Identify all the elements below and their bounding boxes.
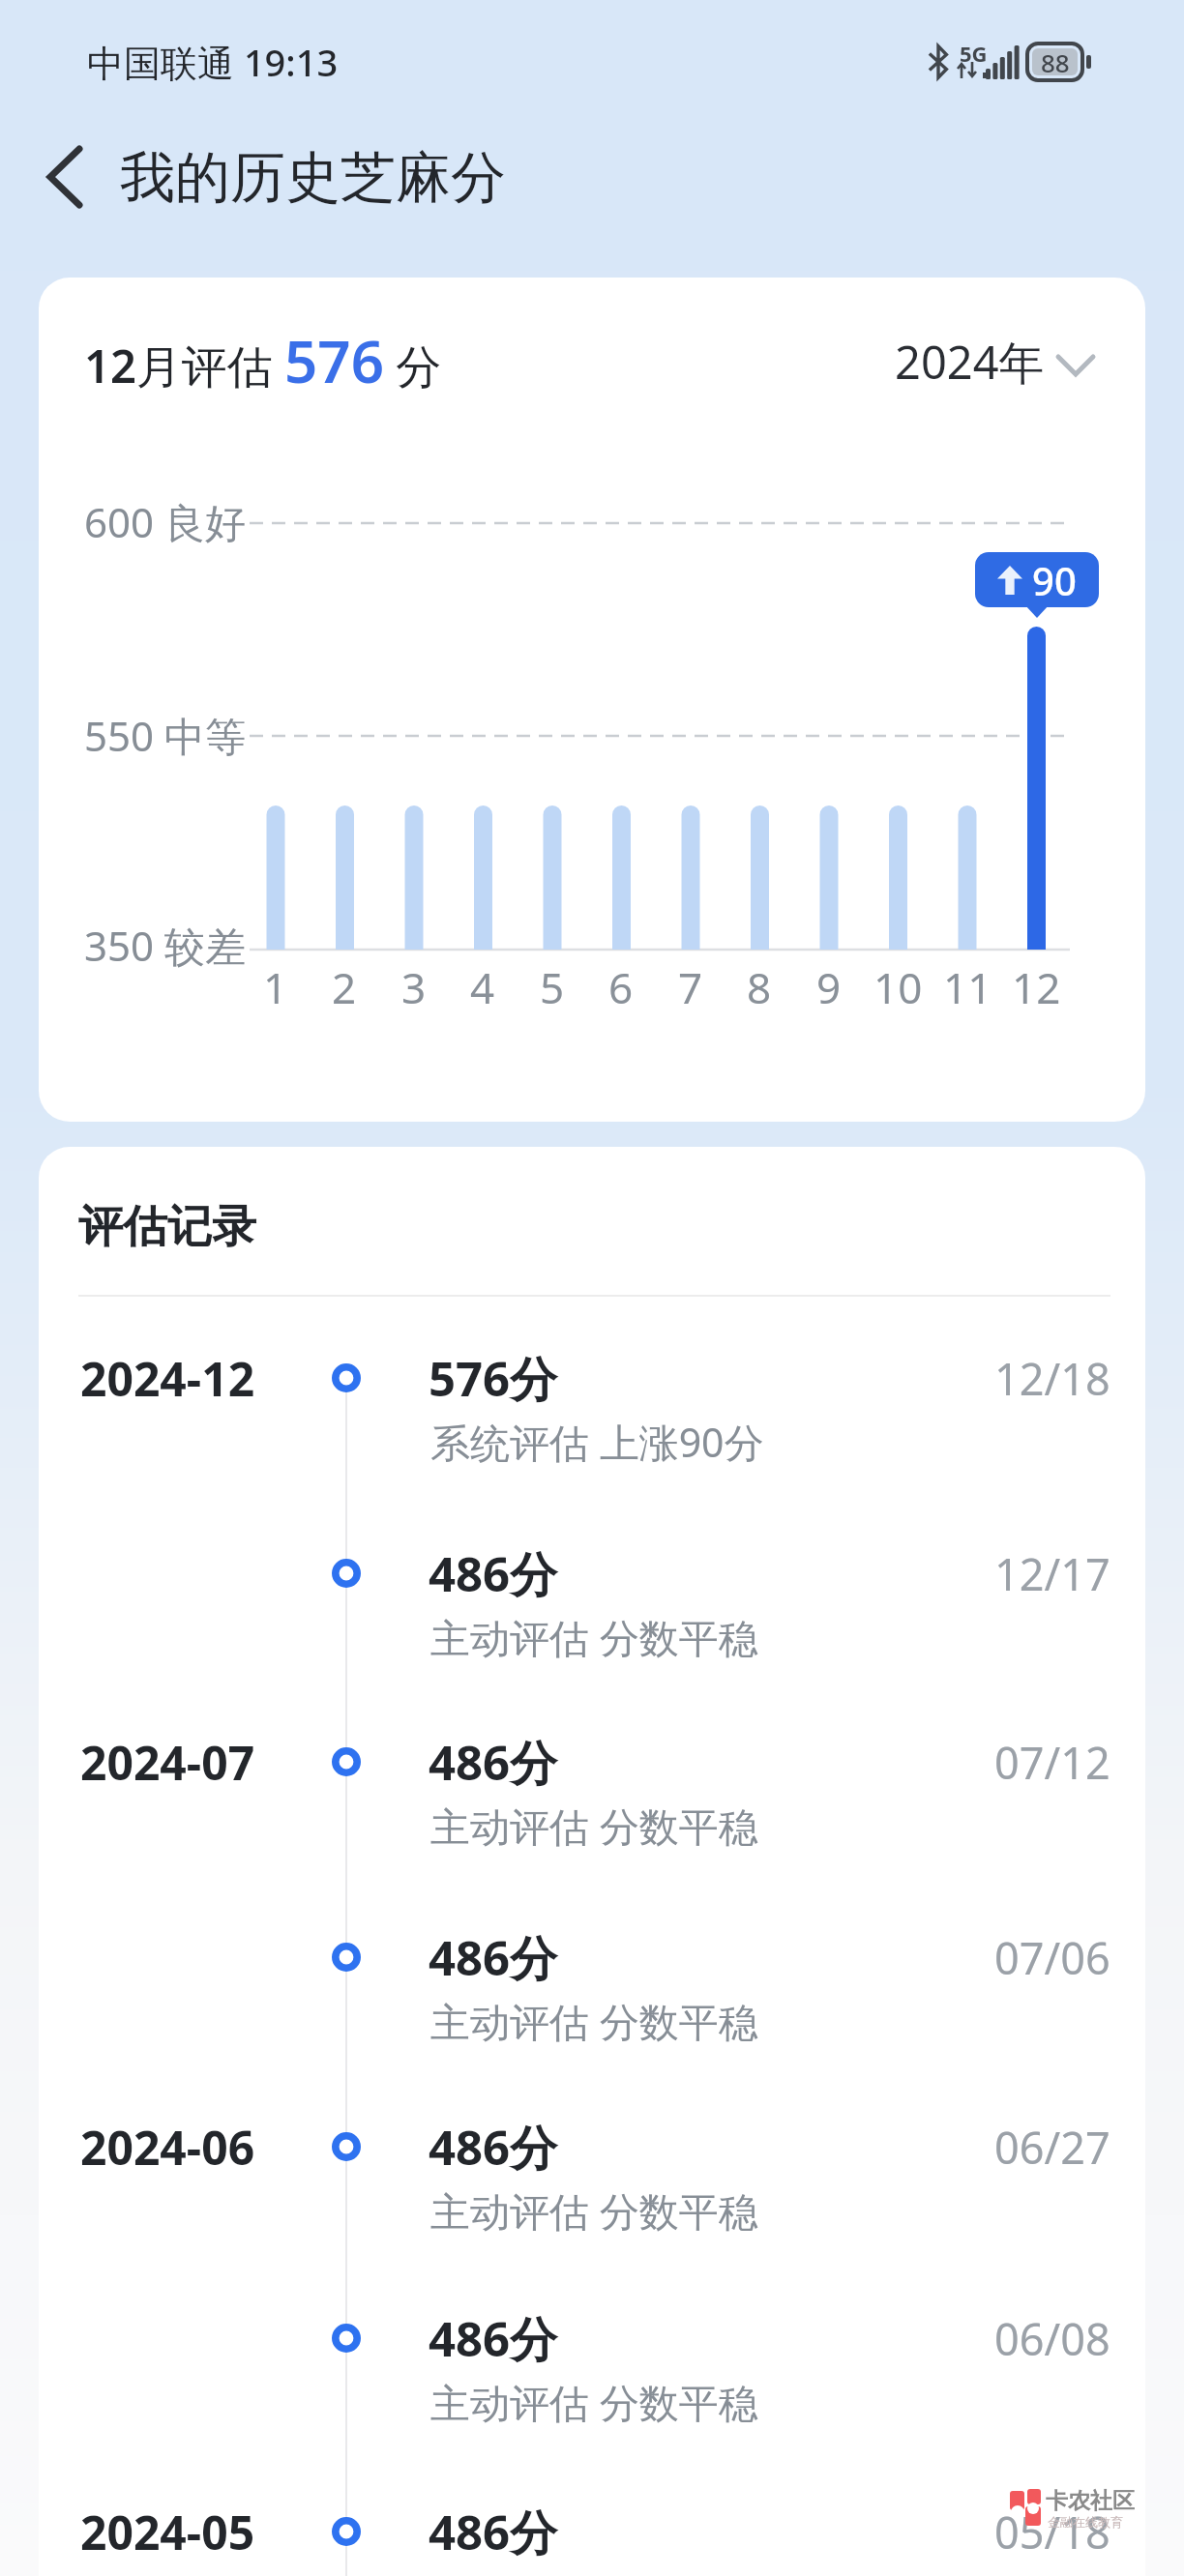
staticText: 系统评估 上涨90分 (430, 1415, 764, 1469)
staticText: 主动评估 分数平稳 (430, 2183, 758, 2238)
staticText: 486分 (429, 1541, 558, 1606)
staticText: 2024-05 (80, 2501, 255, 2563)
staticText: 11 (943, 958, 992, 1016)
staticText: 7 (678, 958, 703, 1016)
staticText: 6 (608, 958, 634, 1016)
staticText: 350 较差 (84, 918, 246, 973)
staticText: 2024年 (895, 331, 1045, 393)
staticText: 2024-06 (80, 2116, 255, 2179)
button[interactable] (429, 1540, 1110, 1676)
staticText: 550 中等 (84, 708, 246, 763)
staticText: 8 (747, 958, 772, 1016)
button[interactable] (429, 2499, 1110, 2576)
button[interactable]: 90 (975, 552, 1099, 607)
staticText: 2024-07 (80, 1731, 255, 1794)
staticText: 486分 (429, 2500, 558, 2564)
button[interactable]: 2024年 (871, 331, 1107, 393)
staticText: 3 (401, 958, 427, 1016)
staticText: 486分 (429, 2115, 558, 2180)
staticText: 评估记录 (78, 1199, 256, 1255)
staticText: 2024-12 (80, 1347, 255, 1410)
staticText: 05/18 (994, 2503, 1110, 2561)
staticText: 06/08 (994, 2309, 1110, 2368)
staticText: 中国联通 19:13 (87, 37, 339, 87)
staticText: 4 (470, 958, 495, 1016)
staticText: 12月评估 576 分 (84, 321, 442, 398)
staticText: 88 (1041, 45, 1070, 79)
button[interactable] (429, 1924, 1110, 2060)
staticText: 5G (960, 39, 988, 62)
button[interactable] (429, 2305, 1110, 2441)
staticText: 486分 (429, 2306, 558, 2371)
staticText: 我的历史芝麻分 (120, 143, 506, 213)
staticText: 12 (1012, 958, 1061, 1016)
staticText: 主动评估 分数平稳 (430, 1799, 758, 1853)
staticText: 90 (1032, 554, 1077, 606)
staticText: 12/18 (994, 1349, 1110, 1408)
staticText: 2 (332, 958, 357, 1016)
button[interactable] (29, 135, 97, 219)
staticText: 07/12 (994, 1733, 1110, 1792)
staticText: 主动评估 分数平稳 (430, 1610, 758, 1664)
staticText: 07/06 (994, 1928, 1110, 1987)
button[interactable] (429, 1729, 1110, 1864)
staticText: 9 (816, 958, 842, 1016)
staticText: 600 良好 (84, 494, 246, 549)
button[interactable] (429, 1345, 1110, 1480)
button[interactable] (429, 2114, 1110, 2249)
staticText: 5 (540, 958, 565, 1016)
staticText: 12/17 (994, 1544, 1110, 1603)
staticText: 06/27 (994, 2118, 1110, 2177)
staticText: 1 (263, 958, 288, 1016)
staticText: 金融在线教育 (1048, 2514, 1123, 2530)
staticText: 10 (873, 958, 923, 1016)
staticText: 卡农社区 (1046, 2487, 1135, 2515)
staticText: 主动评估 分数平稳 (430, 1994, 758, 2048)
staticText: 主动评估 分数平稳 (430, 2375, 758, 2429)
staticText: 576分 (429, 1346, 558, 1411)
staticText: 486分 (429, 1925, 558, 1990)
staticText: 486分 (429, 1730, 558, 1795)
